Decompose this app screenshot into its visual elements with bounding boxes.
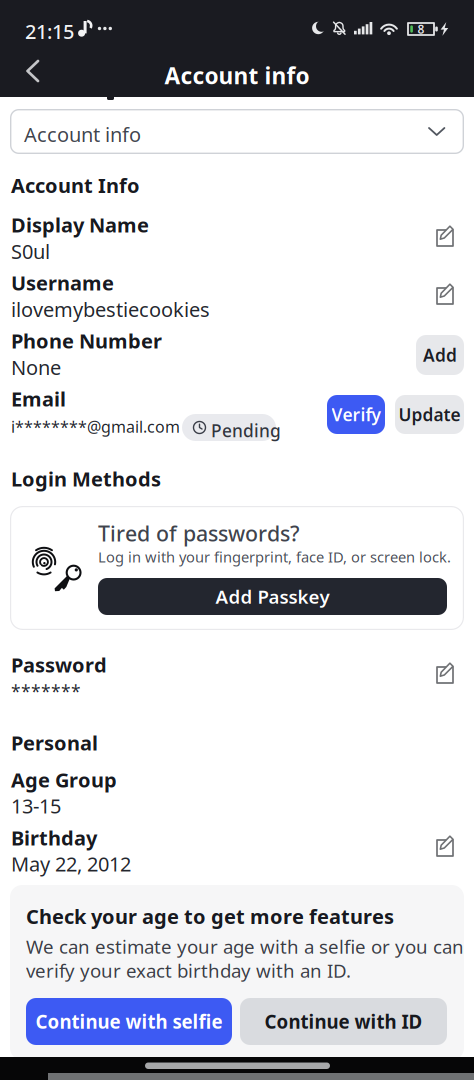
staticText: Account info xyxy=(164,60,309,91)
button[interactable]: Continue with ID xyxy=(240,998,447,1045)
staticText: 8 xyxy=(417,21,424,37)
staticText: Continue with selfie xyxy=(35,1009,222,1034)
staticText: Age Group xyxy=(11,766,117,793)
staticText: Pending xyxy=(211,419,281,442)
staticText: Phone Number xyxy=(11,327,162,354)
staticText: Account Info xyxy=(11,172,140,199)
staticText: Tired of passwords? xyxy=(98,519,300,547)
staticText: Username xyxy=(11,269,114,296)
staticText: We can estimate your age with a selfie o… xyxy=(26,934,464,959)
staticText: Personal xyxy=(11,729,98,756)
button[interactable]: Account info section selector xyxy=(10,109,464,154)
staticText: Display Name xyxy=(11,211,149,238)
staticText: ilovemybestiecookies xyxy=(11,296,210,323)
button[interactable]: Update xyxy=(395,395,464,434)
button[interactable]: Edit birthday xyxy=(436,835,458,857)
staticText: Login Methods xyxy=(11,465,161,492)
staticText: Email xyxy=(11,385,66,412)
staticText: Verify xyxy=(331,403,380,426)
button[interactable]: Edit password xyxy=(436,662,458,684)
staticText: Password xyxy=(11,651,107,678)
staticText: None xyxy=(11,354,61,381)
button[interactable]: Edit display name xyxy=(436,225,458,247)
button[interactable]: Add xyxy=(416,335,464,375)
staticText: Add Passkey xyxy=(215,584,329,609)
staticText: Account info xyxy=(24,121,141,148)
staticText: May 22, 2012 xyxy=(11,850,131,877)
staticText: Add xyxy=(423,343,457,366)
staticText: ******* xyxy=(11,680,81,703)
staticText: i********@gmail.com xyxy=(11,416,180,437)
button[interactable]: Continue with selfie xyxy=(26,998,232,1045)
staticText: verify your exact birthday with an ID. xyxy=(26,958,351,983)
button[interactable]: Edit username xyxy=(436,283,458,305)
button[interactable]: Add Passkey xyxy=(98,578,447,615)
staticText: S0ul xyxy=(11,238,50,265)
staticText: Continue with ID xyxy=(264,1009,422,1034)
button[interactable]: Verify xyxy=(327,395,385,434)
staticText: Update xyxy=(398,403,460,426)
staticText: Log in with your fingerprint, face ID, o… xyxy=(98,547,451,566)
staticText: Check your age to get more features xyxy=(26,903,394,930)
staticText: 21:15 xyxy=(25,18,74,45)
staticText: 13-15 xyxy=(11,792,61,819)
staticText: Birthday xyxy=(11,824,97,851)
button[interactable]: Back xyxy=(16,50,50,92)
